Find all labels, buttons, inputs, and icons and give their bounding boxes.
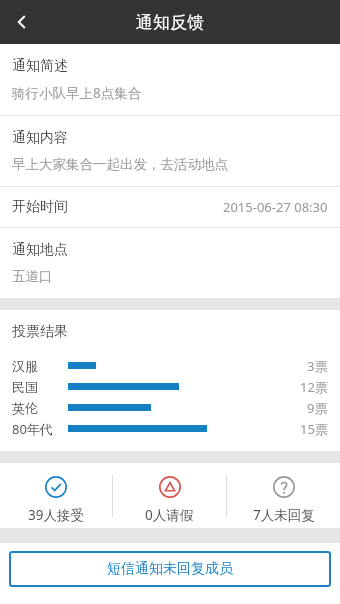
staticText: 通知内容 — [12, 129, 68, 147]
staticText: 民国 — [12, 379, 38, 395]
button[interactable]: 开始时间 — [0, 187, 340, 227]
staticText: 9票 — [307, 399, 328, 417]
staticText: 7人未回复 — [253, 506, 315, 524]
button[interactable]: 0人请假 — [113, 468, 226, 524]
staticText: 3票 — [307, 357, 328, 375]
button[interactable]: 通知地点 — [0, 228, 340, 298]
staticText: 投票结果 — [12, 323, 68, 341]
staticText: 开始时间 — [12, 198, 68, 216]
button[interactable]: 短信通知未回复成员 — [9, 551, 331, 587]
button[interactable]: 7人未回复 — [227, 468, 340, 524]
staticText: 39人接受 — [28, 506, 84, 524]
staticText: 短信通知未回复成员 — [107, 560, 233, 578]
staticText: 通知地点 — [12, 241, 68, 259]
staticText: 通知简述 — [12, 57, 68, 75]
staticText: 80年代 — [12, 420, 53, 438]
staticText: 汉服 — [12, 358, 38, 374]
button[interactable]: 39人接受 — [0, 468, 112, 524]
staticText: 五道口 — [12, 268, 53, 285]
staticText: 15票 — [300, 420, 328, 438]
button[interactable]: Back — [0, 0, 44, 44]
staticText: 骑行小队早上8点集合 — [12, 84, 142, 102]
staticText: 12票 — [300, 378, 328, 396]
staticText: 通知反馈 — [136, 12, 204, 33]
staticText: 0人请假 — [145, 506, 194, 524]
staticText: 英伦 — [12, 400, 38, 416]
staticText: 早上大家集合一起出发，去活动地点 — [12, 156, 228, 173]
button[interactable]: 通知简述 — [0, 44, 340, 115]
button[interactable]: 通知内容 — [0, 116, 340, 186]
staticText: 2015-06-27 08:30 — [223, 198, 328, 216]
